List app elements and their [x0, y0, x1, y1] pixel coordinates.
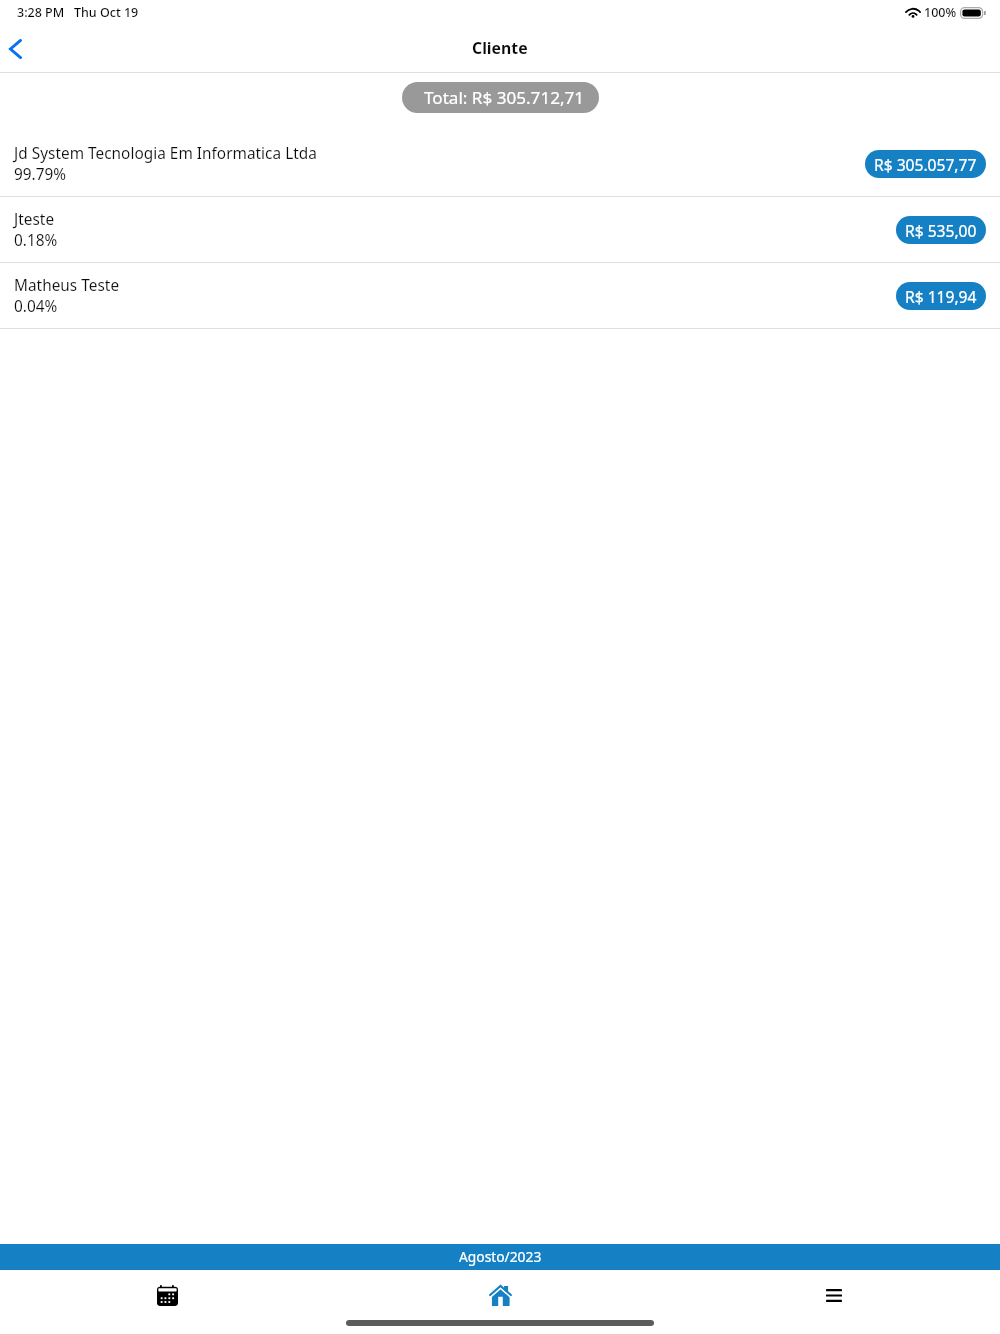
button[interactable]: Jteste	[0, 197, 1000, 263]
button[interactable]: Matheus Teste	[0, 263, 1000, 329]
button[interactable]: Jd System Tecnologia Em Informatica Ltda	[0, 131, 1000, 197]
staticText: Total: R$ 305.712,71	[424, 86, 585, 109]
button[interactable]: Home	[334, 1270, 667, 1321]
staticText: 0.04%	[14, 296, 58, 317]
staticText: R$ 305.057,77	[874, 154, 977, 175]
staticText: 99.79%	[14, 164, 67, 185]
staticText: 0.18%	[14, 230, 58, 251]
staticText: Cliente	[472, 37, 528, 59]
staticText: R$ 119,94	[905, 286, 977, 307]
button[interactable]: Menu	[667, 1270, 1000, 1321]
staticText: Matheus Teste	[14, 275, 120, 296]
button[interactable]: Back	[0, 25, 40, 72]
button[interactable]: Total: R$ 305.712,71	[402, 82, 599, 113]
staticText: 100%	[924, 4, 957, 21]
staticText: 3:28 PM	[17, 4, 65, 21]
staticText: Agosto/2023	[459, 1247, 542, 1266]
staticText: R$ 535,00	[905, 220, 977, 241]
staticText: Thu Oct 19	[74, 4, 139, 21]
button[interactable]: Agosto/2023	[0, 1244, 1000, 1270]
button[interactable]: Calendar	[0, 1270, 334, 1321]
staticText: Jteste	[14, 209, 55, 230]
staticText: Jd System Tecnologia Em Informatica Ltda	[14, 143, 317, 164]
